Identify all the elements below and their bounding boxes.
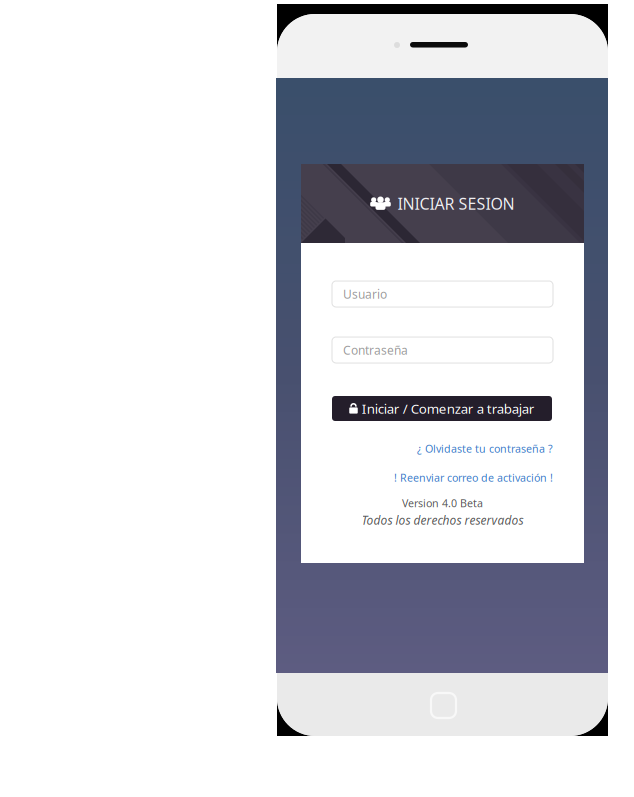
button[interactable]: ! Reenviar correo de activación ! (332, 470, 553, 485)
button[interactable]: ¿ Olvidaste tu contraseña ? (332, 441, 553, 456)
staticText: Contraseña (343, 342, 408, 358)
button[interactable]: Iniciar / Comenzar a trabajar (332, 396, 552, 421)
staticText: Usuario (343, 286, 387, 302)
staticText: Version 4.0 Beta (402, 496, 483, 510)
staticText: INICIAR SESION (397, 193, 514, 214)
staticText: Todos los derechos reservados (361, 512, 523, 528)
staticText: ¿ Olvidaste tu contraseña ? (417, 441, 553, 456)
staticText: ! Reenviar correo de activación ! (394, 470, 553, 485)
staticText: Iniciar / Comenzar a trabajar (362, 400, 535, 417)
